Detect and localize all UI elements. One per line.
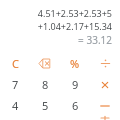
button[interactable]: Plus (90, 116, 120, 120)
button[interactable]: Minus (90, 95, 120, 116)
button[interactable]: 6 (60, 95, 90, 116)
button[interactable]: Multiply (90, 74, 120, 95)
staticText: 5 (42, 98, 49, 113)
button[interactable]: Divide (90, 53, 120, 74)
staticText: % (70, 56, 80, 71)
staticText: C (12, 56, 19, 71)
button[interactable]: 9 (60, 74, 90, 95)
button[interactable]: 5 (30, 95, 60, 116)
button[interactable]: C (0, 53, 30, 74)
staticText: 4 (12, 98, 19, 113)
staticText: 4.51+2.53+2.53+5 (37, 7, 112, 19)
button[interactable]: Backspace (30, 53, 60, 74)
staticText: 6 (72, 98, 79, 113)
staticText: 7 (12, 77, 19, 92)
staticText: +1.04+2.17+15.34 (37, 20, 112, 32)
button[interactable]: % (60, 53, 90, 74)
button[interactable]: 4 (0, 95, 30, 116)
staticText: 9 (72, 77, 79, 92)
button[interactable]: 8 (30, 74, 60, 95)
staticText: = 33.12 (78, 33, 112, 47)
button[interactable]: 7 (0, 74, 30, 95)
staticText: 8 (42, 77, 49, 92)
